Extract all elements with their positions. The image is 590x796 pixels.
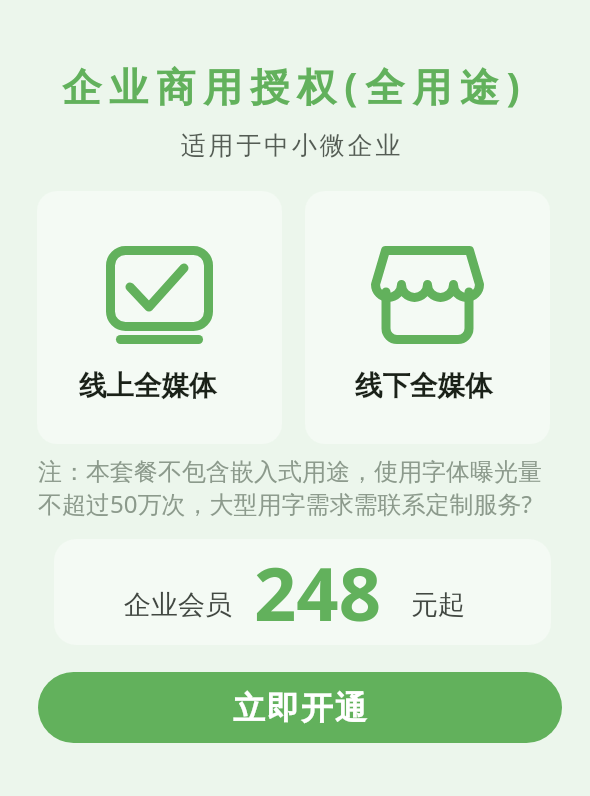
staticText: 企业商用授权(全用途) <box>0 59 590 112</box>
button[interactable]: 线上全媒体 <box>37 191 282 444</box>
staticText: 适用于中小微企业 <box>0 130 587 161</box>
staticText: 企业会员 <box>124 588 232 622</box>
staticText: 248 <box>254 542 381 643</box>
staticText: 元起 <box>411 588 465 622</box>
button[interactable]: 线下全媒体 <box>305 191 550 444</box>
staticText: 线下全媒体 <box>355 366 516 404</box>
staticText: 立即开通 <box>232 688 368 728</box>
staticText: 线上全媒体 <box>79 366 240 404</box>
staticText: 注：本套餐不包含嵌入式用途，使用字体曝光量不超过50万次，大型用字需求需联系定制… <box>38 457 554 520</box>
button[interactable]: 立即开通 <box>38 672 562 743</box>
button[interactable]: 企业会员 <box>54 539 551 645</box>
